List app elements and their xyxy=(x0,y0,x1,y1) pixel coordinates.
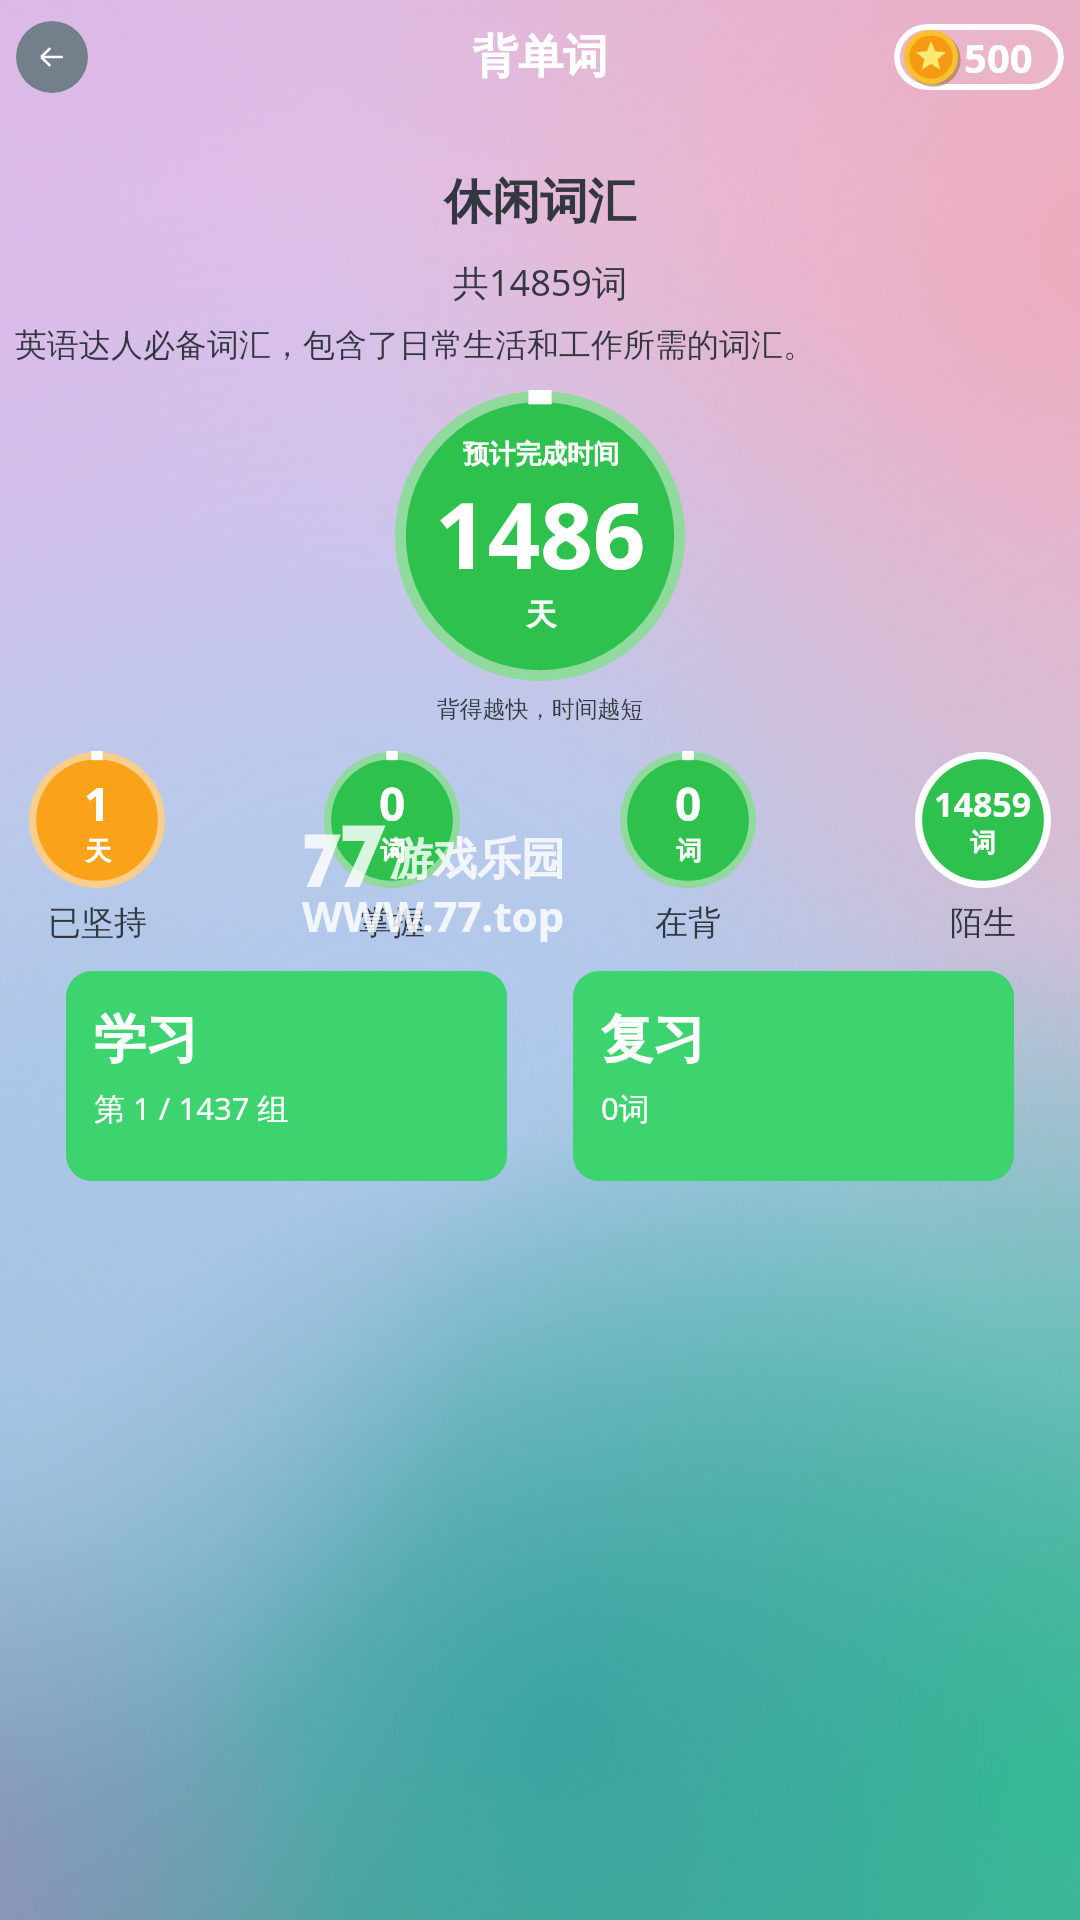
staticText: 陌生 xyxy=(950,902,1016,944)
staticText: 在背 xyxy=(655,902,721,944)
button[interactable]: 0 xyxy=(613,752,763,944)
button[interactable]: 14859 xyxy=(908,752,1058,944)
staticText: 天 xyxy=(526,596,556,634)
staticText: 复习 xyxy=(601,1007,705,1073)
staticText: 预计完成时间 xyxy=(463,438,619,471)
staticText: 500 xyxy=(964,30,1033,84)
staticText: 共14859词 xyxy=(453,258,628,307)
staticText: 背单词 xyxy=(473,29,608,86)
staticText: 14859 xyxy=(934,781,1032,827)
staticText: 1 xyxy=(84,772,111,835)
button[interactable]: 1 xyxy=(22,752,172,944)
button[interactable]: 0 xyxy=(317,752,467,944)
staticText: 0词 xyxy=(601,1087,650,1129)
staticText: 游戏乐园 xyxy=(389,832,565,887)
staticText: 第 1 / 1437 组 xyxy=(94,1087,289,1129)
staticText: 0 xyxy=(675,772,702,835)
staticText: 已坚持 xyxy=(48,902,147,944)
staticText: 学习 xyxy=(94,1007,198,1073)
staticText: 掌握 xyxy=(359,902,425,944)
button[interactable]: 学习 xyxy=(66,971,507,1181)
staticText: 天 xyxy=(85,835,111,868)
staticText: WWW.77.top xyxy=(302,887,565,944)
staticText: 英语达人必备词汇，包含了日常生活和工作所需的词汇。 xyxy=(15,325,1065,365)
button[interactable]: Back xyxy=(16,21,88,93)
staticText: 词 xyxy=(380,835,406,868)
button[interactable]: 复习 xyxy=(573,971,1014,1181)
staticText: 1486 xyxy=(435,471,646,596)
button[interactable]: 500 xyxy=(894,24,1064,90)
staticText: 休闲词汇 xyxy=(444,172,636,232)
staticText: 词 xyxy=(970,827,996,860)
staticText: 0 xyxy=(379,772,406,835)
staticText: 背得越快，时间越短 xyxy=(0,695,1080,724)
staticText: 词 xyxy=(676,835,702,868)
button[interactable]: 预计完成时间 xyxy=(395,391,685,681)
